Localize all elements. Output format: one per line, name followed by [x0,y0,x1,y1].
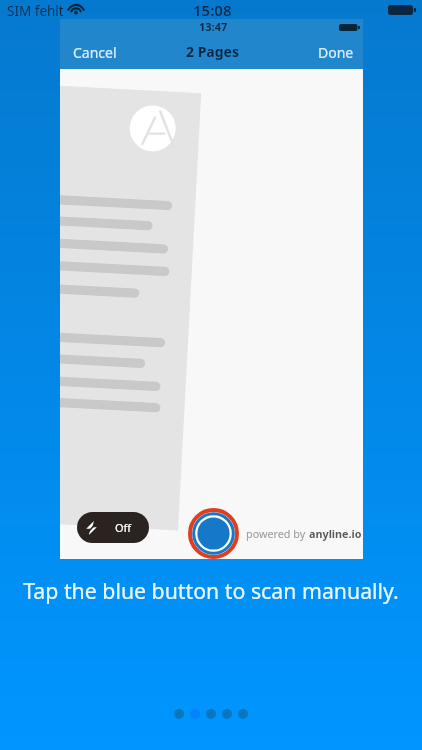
button[interactable]: Done [306,37,363,68]
button[interactable]: Off [77,512,149,543]
staticText: Done [318,43,354,62]
staticText: Off [115,520,132,535]
button[interactable]: Cancel [60,37,130,68]
staticText: Tap the blue button to scan manually. [0,576,422,605]
staticText: 2 Pages [186,42,239,61]
staticText: anyline.io [309,526,362,541]
staticText: 15:08 [193,0,232,20]
staticText: SIM fehlt [7,2,64,20]
button[interactable]: Scan [188,508,239,559]
staticText: Cancel [73,43,117,62]
staticText: powered by [246,526,309,541]
staticText: 13:47 [199,19,228,34]
